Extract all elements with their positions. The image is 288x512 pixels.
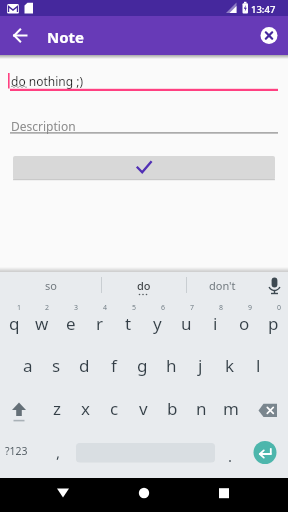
button[interactable]: f	[99, 342, 128, 386]
button[interactable]: 1	[0, 298, 28, 342]
staticText: don't	[209, 278, 236, 293]
staticText: s	[52, 354, 61, 377]
button[interactable]: so	[0, 272, 101, 298]
button[interactable]: x	[71, 386, 100, 430]
button[interactable]	[258, 272, 288, 298]
button[interactable]	[6, 21, 34, 49]
button[interactable]: a	[14, 342, 42, 386]
staticText: ,	[56, 442, 61, 462]
staticText: .	[228, 446, 233, 466]
staticText: 1	[17, 303, 22, 313]
staticText: 5	[132, 303, 137, 313]
button[interactable]: c	[100, 386, 129, 430]
staticText: do	[137, 278, 151, 293]
button[interactable]: m	[216, 386, 245, 430]
staticText: n	[196, 397, 207, 420]
staticText: j	[198, 354, 203, 377]
staticText: o	[239, 312, 250, 335]
staticText: w	[35, 312, 49, 335]
staticText: q	[9, 312, 20, 335]
button[interactable]: 3	[56, 298, 85, 342]
staticText: p	[268, 312, 279, 335]
staticText: k	[225, 354, 235, 377]
staticText: v	[139, 397, 148, 420]
button[interactable]: b	[158, 386, 187, 430]
staticText: f	[111, 354, 117, 377]
button[interactable]: 6	[143, 298, 172, 342]
staticText: 7	[190, 303, 195, 313]
staticText: e	[66, 312, 76, 335]
button[interactable]: don't	[186, 272, 258, 298]
button[interactable]: ,	[43, 430, 72, 476]
button[interactable]	[245, 386, 288, 430]
button[interactable]	[245, 430, 288, 476]
button[interactable]	[39, 478, 87, 512]
staticText: c	[110, 397, 119, 420]
staticText: 13:47	[251, 3, 276, 16]
button[interactable]: g	[128, 342, 157, 386]
button[interactable]	[6, 62, 282, 92]
button[interactable]: do	[101, 272, 186, 298]
button[interactable]: ?123	[0, 430, 43, 476]
button[interactable]	[256, 22, 282, 48]
button[interactable]: 7	[172, 298, 201, 342]
staticText: 0	[277, 303, 282, 313]
button[interactable]: 4	[85, 298, 114, 342]
staticText: t	[125, 312, 132, 335]
staticText: z	[53, 397, 61, 420]
staticText: r	[96, 312, 104, 335]
staticText: h	[166, 354, 177, 377]
button[interactable]: 2	[28, 298, 56, 342]
button[interactable]: z	[43, 386, 71, 430]
staticText: ?123	[5, 444, 28, 458]
staticText: so	[45, 278, 57, 293]
staticText: Note	[47, 27, 85, 47]
button[interactable]: s	[42, 342, 70, 386]
staticText: b	[167, 397, 178, 420]
button[interactable]: k	[215, 342, 244, 386]
button[interactable]: 9	[230, 298, 259, 342]
button[interactable]: v	[129, 386, 158, 430]
staticText: g	[137, 354, 148, 377]
staticText: y	[153, 312, 162, 335]
staticText: 4	[103, 303, 108, 313]
button[interactable]: 8	[201, 298, 230, 342]
button[interactable]: h	[157, 342, 186, 386]
button[interactable]: d	[70, 342, 99, 386]
staticText: a	[23, 354, 33, 377]
staticText: m	[223, 397, 239, 420]
button[interactable]	[13, 156, 275, 180]
staticText: u	[181, 312, 192, 335]
button[interactable]: l	[244, 342, 273, 386]
staticText: 2	[45, 303, 50, 313]
staticText: Description	[11, 118, 76, 134]
button[interactable]: 5	[114, 298, 143, 342]
button[interactable]: n	[187, 386, 216, 430]
button[interactable]: j	[186, 342, 215, 386]
staticText: do nothing ;)	[11, 73, 84, 89]
staticText: 8	[219, 303, 224, 313]
button[interactable]	[120, 478, 168, 512]
staticText: 6	[161, 303, 166, 313]
staticText: 9	[248, 303, 253, 313]
staticText: i	[213, 312, 218, 335]
button[interactable]	[0, 386, 43, 430]
button[interactable]: .	[216, 430, 245, 476]
staticText: 3	[74, 303, 79, 313]
button[interactable]	[72, 430, 216, 476]
staticText: d	[79, 354, 90, 377]
button[interactable]	[6, 108, 282, 136]
staticText: l	[256, 354, 261, 377]
button[interactable]	[200, 478, 248, 512]
staticText: x	[81, 397, 90, 420]
button[interactable]: 0	[259, 298, 288, 342]
